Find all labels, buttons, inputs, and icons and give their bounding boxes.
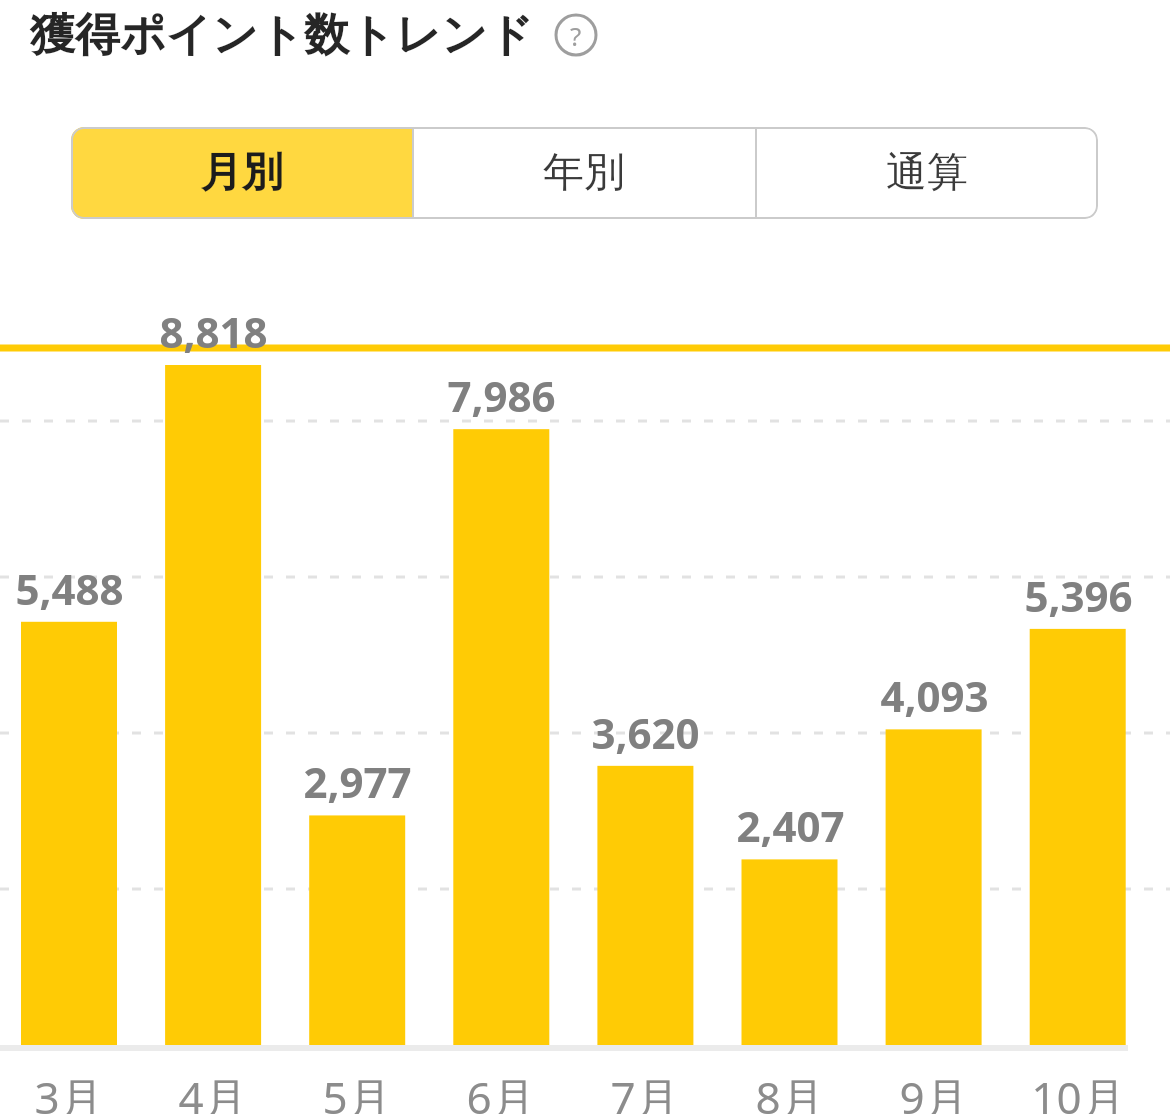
staticText: 4,093	[880, 667, 989, 723]
button[interactable]: 月別	[71, 127, 412, 219]
staticText: 2,977	[303, 753, 412, 809]
staticText: 月別	[201, 147, 283, 199]
staticText: 獲得ポイント数トレンド	[30, 7, 534, 64]
staticText: 5,488	[15, 560, 124, 616]
staticText: 5月	[322, 1067, 392, 1114]
staticText: 通算	[886, 147, 968, 199]
staticText: 3月	[34, 1067, 104, 1114]
staticText: 7月	[610, 1067, 680, 1114]
staticText: 6月	[466, 1067, 536, 1114]
staticText: ?	[570, 18, 582, 53]
button[interactable]: 年別	[412, 127, 755, 219]
staticText: 7,986	[447, 367, 556, 423]
staticText: 10月	[1031, 1067, 1126, 1114]
staticText: 8月	[755, 1067, 825, 1114]
staticText: 9月	[899, 1067, 969, 1114]
button[interactable]: 通算	[755, 127, 1098, 219]
button[interactable]: ヘルプ	[554, 13, 598, 57]
staticText: 年別	[543, 147, 625, 199]
staticText: 2,407	[736, 797, 845, 853]
staticText: 5,396	[1024, 567, 1133, 623]
staticText: 4月	[178, 1067, 248, 1114]
staticText: 3,620	[591, 704, 700, 760]
staticText: 8,818	[159, 303, 268, 359]
